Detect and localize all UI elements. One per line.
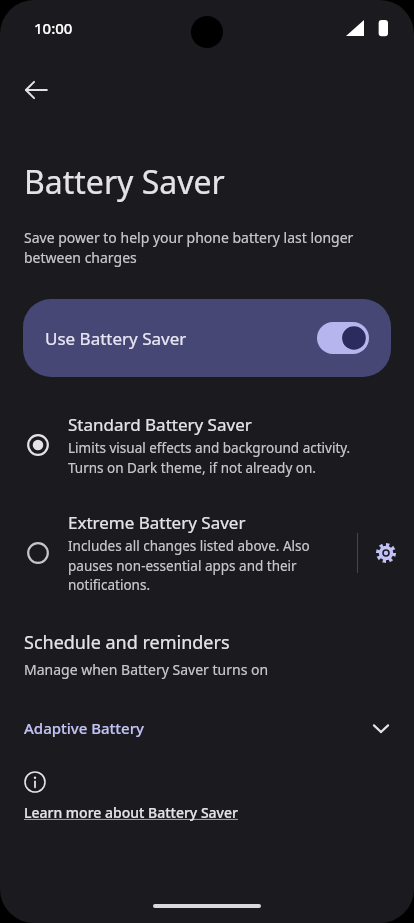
button[interactable]: Schedule and reminders xyxy=(0,628,414,685)
button[interactable]: Standard Battery Saver xyxy=(0,403,414,487)
staticText: Limits visual effects and background act… xyxy=(68,439,351,477)
staticText: Schedule and reminders xyxy=(24,630,230,655)
button[interactable]: Back xyxy=(12,66,60,114)
staticText: Standard Battery Saver xyxy=(68,413,252,436)
button[interactable]: Extreme Battery Saver xyxy=(0,503,357,602)
staticText: Use Battery Saver xyxy=(45,327,317,350)
button[interactable]: Adaptive Battery xyxy=(0,711,414,745)
staticText: Battery Saver xyxy=(24,160,225,204)
staticText: Save power to help your phone battery la… xyxy=(24,228,394,267)
button[interactable]: Use Battery Saver xyxy=(23,299,391,377)
staticText: Extreme Battery Saver xyxy=(68,511,246,534)
button[interactable]: Learn more about Battery Saver xyxy=(0,767,414,826)
staticText: Manage when Battery Saver turns on xyxy=(24,660,269,679)
staticText: 10:00 xyxy=(34,18,73,38)
staticText: Learn more about Battery Saver xyxy=(24,803,238,822)
staticText: Adaptive Battery xyxy=(24,718,370,738)
staticText: Includes all changes listed above. Also … xyxy=(68,537,310,594)
button[interactable]: Extreme Battery Saver settings xyxy=(358,525,414,581)
